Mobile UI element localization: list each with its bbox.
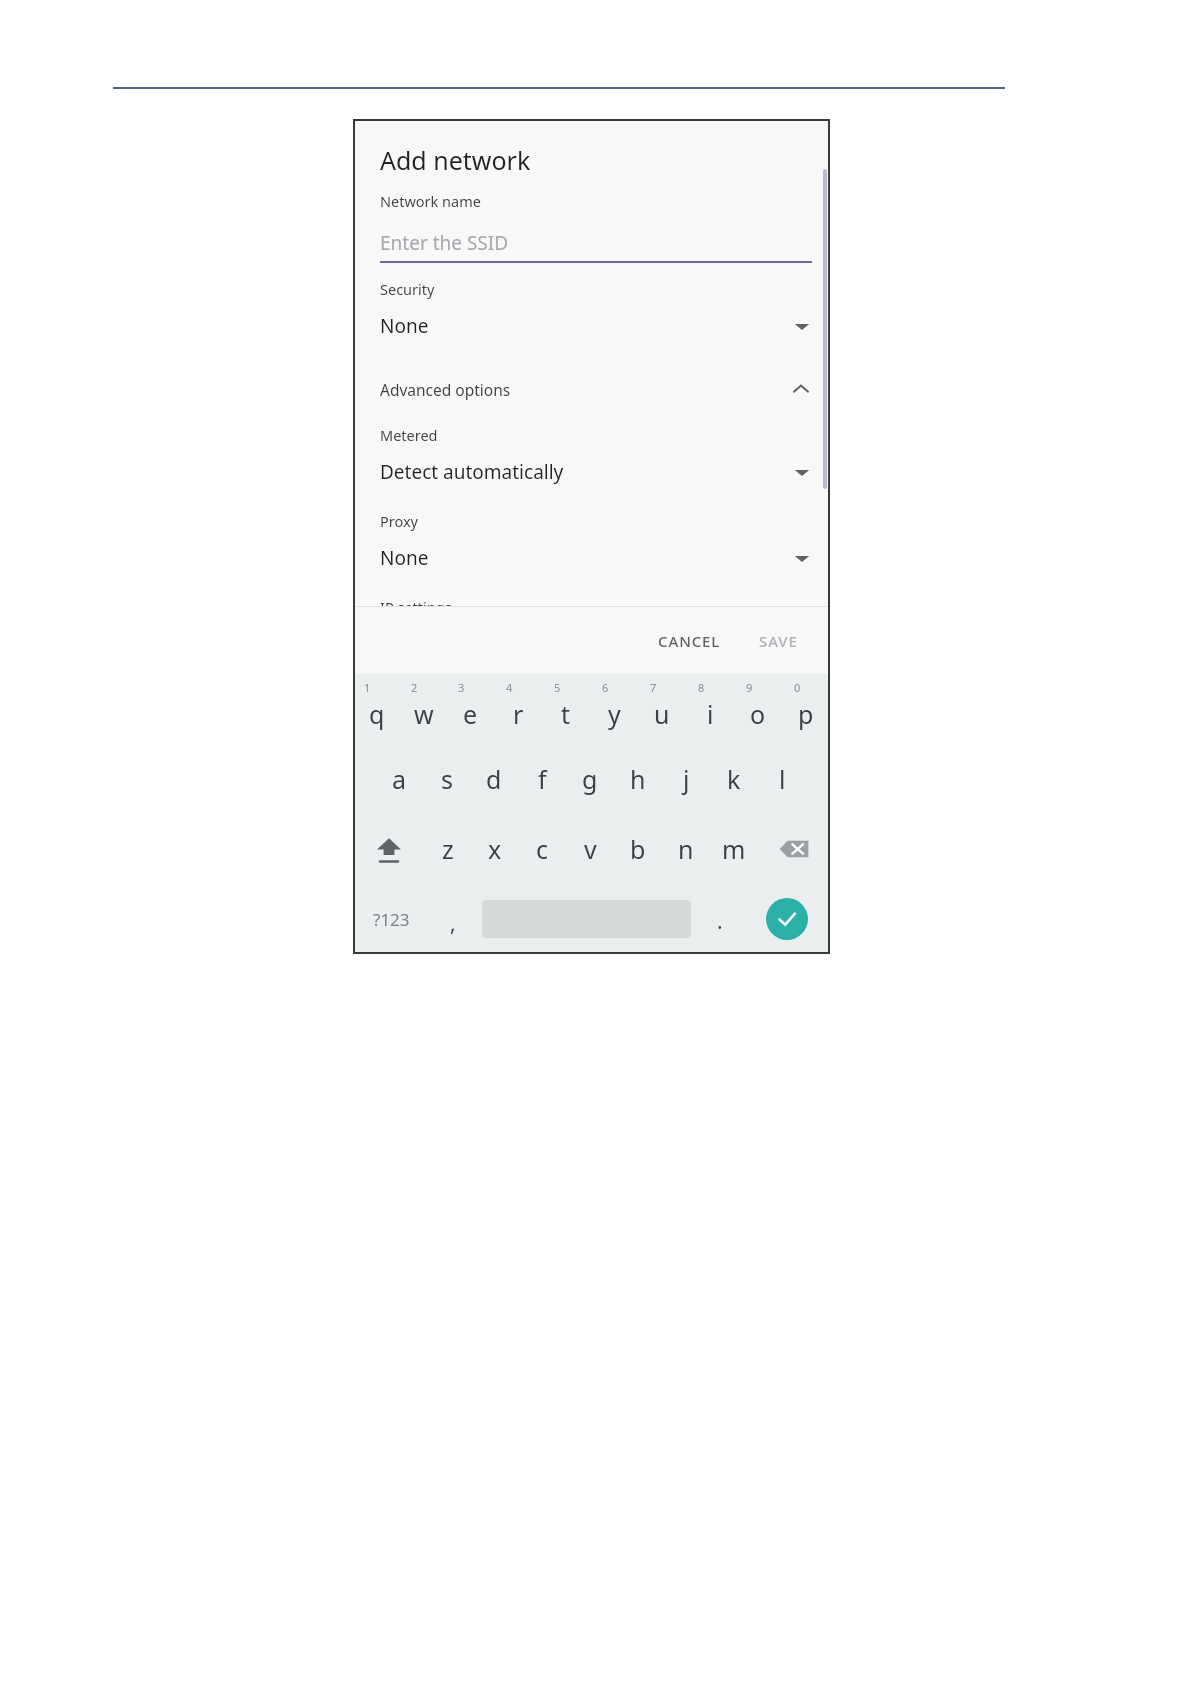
button[interactable]: None — [380, 309, 812, 343]
staticText: d — [486, 762, 502, 796]
staticText: ?123 — [373, 908, 410, 931]
button[interactable]: , — [429, 884, 477, 954]
button[interactable]: 5 — [542, 674, 590, 744]
button[interactable]: 7 — [638, 674, 686, 744]
staticText: 0 — [794, 680, 801, 695]
button[interactable]: Enter the SSID — [380, 223, 812, 263]
button[interactable]: Enter — [766, 898, 808, 940]
button[interactable]: k — [710, 744, 758, 814]
staticText: u — [654, 697, 670, 731]
button[interactable]: Shift — [353, 814, 424, 884]
button[interactable]: None — [380, 541, 812, 575]
button[interactable]: z — [424, 814, 471, 884]
button[interactable]: . — [696, 884, 744, 954]
staticText: 6 — [602, 680, 609, 695]
other: Open None dropdown — [792, 548, 812, 568]
button[interactable]: ?123 — [353, 884, 429, 954]
button[interactable]: v — [566, 814, 614, 884]
staticText: q — [369, 697, 385, 731]
staticText: z — [442, 832, 454, 866]
staticText: Advanced options — [380, 379, 511, 400]
button[interactable]: Advanced options — [380, 373, 812, 405]
other: Open None dropdown — [792, 316, 812, 336]
staticText: j — [683, 762, 690, 796]
button[interactable]: 0 — [782, 674, 830, 744]
staticText: p — [798, 697, 814, 731]
other: Collapse advanced options — [790, 378, 812, 400]
button[interactable]: h — [614, 744, 662, 814]
staticText: c — [536, 832, 549, 866]
button[interactable]: c — [518, 814, 566, 884]
staticText: s — [441, 762, 453, 796]
staticText: Enter the SSID — [380, 230, 509, 256]
button[interactable]: a — [376, 744, 423, 814]
staticText: CANCEL — [658, 631, 721, 651]
staticText: x — [488, 832, 502, 866]
button[interactable]: Detect automatically — [380, 455, 812, 489]
staticText: l — [779, 762, 786, 796]
staticText: r — [513, 697, 524, 731]
other: Open Detect automatically dropdown — [792, 462, 812, 482]
staticText: Add network — [380, 143, 531, 177]
staticText: 7 — [650, 680, 657, 695]
button[interactable]: l — [758, 744, 806, 814]
staticText: k — [727, 762, 741, 796]
staticText: g — [582, 762, 598, 796]
staticText: . — [717, 907, 723, 936]
staticText: y — [608, 697, 621, 731]
staticText: n — [678, 832, 694, 866]
staticText: 3 — [458, 680, 465, 695]
staticText: None — [380, 545, 429, 571]
staticText: Detect automatically — [380, 459, 564, 485]
button[interactable]: SAVE — [749, 623, 808, 659]
staticText: w — [414, 697, 434, 731]
button[interactable]: 3 — [447, 674, 494, 744]
staticText: e — [463, 697, 478, 731]
staticText: v — [584, 832, 597, 866]
button[interactable]: d — [470, 744, 518, 814]
staticText: 1 — [364, 680, 371, 695]
staticText: 5 — [554, 680, 561, 695]
staticText: h — [630, 762, 646, 796]
staticText: 2 — [411, 680, 418, 695]
staticText: , — [450, 909, 456, 938]
staticText: SAVE — [759, 631, 798, 651]
button[interactable]: 6 — [590, 674, 638, 744]
staticText: 4 — [506, 680, 513, 695]
staticText: Security — [380, 279, 435, 299]
button[interactable]: s — [423, 744, 470, 814]
staticText: o — [750, 697, 766, 731]
button[interactable]: m — [710, 814, 758, 884]
button[interactable]: f — [518, 744, 566, 814]
button[interactable]: j — [662, 744, 710, 814]
staticText: i — [707, 697, 714, 731]
staticText: Proxy — [380, 511, 419, 531]
button[interactable]: CANCEL — [648, 623, 731, 659]
button[interactable]: 9 — [734, 674, 782, 744]
staticText: b — [630, 832, 646, 866]
button[interactable]: Backspace — [758, 814, 830, 884]
staticText: t — [561, 697, 571, 731]
staticText: 8 — [698, 680, 705, 695]
button[interactable]: 4 — [494, 674, 542, 744]
staticText: f — [538, 762, 547, 796]
button[interactable]: 1 — [353, 674, 400, 744]
button[interactable]: n — [662, 814, 710, 884]
button[interactable]: x — [471, 814, 518, 884]
button[interactable]: b — [614, 814, 662, 884]
button[interactable]: 2 — [400, 674, 447, 744]
staticText: Metered — [380, 425, 438, 445]
staticText: IP settings — [380, 597, 452, 606]
staticText: None — [380, 313, 429, 339]
button[interactable]: g — [566, 744, 614, 814]
staticText: a — [392, 762, 407, 796]
staticText: Network name — [380, 191, 481, 211]
staticText: 9 — [746, 680, 753, 695]
button[interactable]: 8 — [686, 674, 734, 744]
staticText: m — [722, 832, 746, 866]
